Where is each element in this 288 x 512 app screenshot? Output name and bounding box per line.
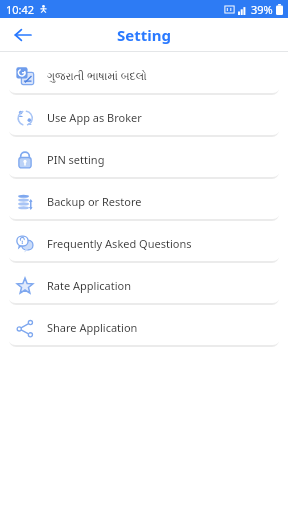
button[interactable]: ગુજરાતી ભાષામાં બદલો xyxy=(8,58,280,93)
staticText: Share Application xyxy=(47,320,138,335)
staticText: Setting xyxy=(117,25,171,45)
button[interactable]: Back xyxy=(8,20,38,50)
staticText: 39% xyxy=(251,2,273,17)
staticText: Rate Application xyxy=(47,278,131,293)
staticText: Use App as Broker xyxy=(47,110,142,125)
button[interactable]: Frequently Asked Questions xyxy=(8,226,280,261)
staticText: 10:42 xyxy=(6,2,35,17)
staticText: PIN setting xyxy=(47,152,105,167)
button[interactable]: PIN setting xyxy=(8,142,280,177)
button[interactable]: Backup or Restore xyxy=(8,184,280,219)
staticText: Frequently Asked Questions xyxy=(47,236,192,251)
staticText: ગુજરાતી ભાષામાં બદલો xyxy=(47,68,147,83)
button[interactable]: Use App as Broker xyxy=(8,100,280,135)
button[interactable]: Rate Application xyxy=(8,268,280,303)
button[interactable]: Share Application xyxy=(8,310,280,345)
staticText: Backup or Restore xyxy=(47,194,142,209)
